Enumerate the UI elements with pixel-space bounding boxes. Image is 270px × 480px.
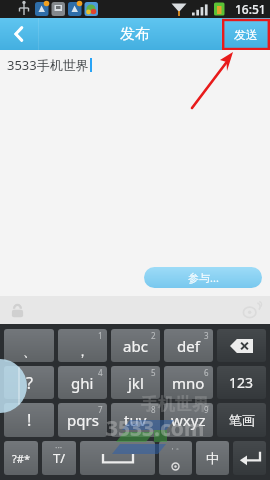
staticText: 手机世界: [141, 394, 209, 415]
button[interactable]: ?#*: [4, 441, 38, 475]
staticText: 6: [204, 367, 209, 378]
staticText: 参与...: [188, 270, 219, 285]
staticText: 、: [23, 343, 36, 359]
staticText: ghi: [71, 373, 94, 393]
staticText: mno: [172, 373, 205, 393]
button[interactable]: 发送: [222, 18, 270, 50]
staticText: 发送: [234, 27, 258, 42]
staticText: jkl: [128, 373, 144, 393]
button[interactable]: 4: [58, 366, 107, 399]
staticText: 3: [204, 330, 209, 341]
staticText: def: [177, 336, 200, 356]
button[interactable]: 、: [4, 329, 54, 362]
staticText: T/: [53, 449, 66, 467]
button[interactable]: Space: [80, 441, 155, 475]
button[interactable]: 2: [111, 329, 160, 362]
button[interactable]: Backspace: [217, 329, 266, 362]
button[interactable]: 123: [217, 366, 266, 399]
button[interactable]: 6: [164, 366, 213, 399]
staticText: ，。: [169, 442, 183, 451]
staticText: 发布: [120, 25, 150, 44]
button[interactable]: 笔画: [217, 403, 266, 437]
staticText: pqrs: [67, 410, 99, 430]
button[interactable]: Switch input method: [42, 441, 76, 475]
staticText: 3533.com: [106, 414, 205, 443]
staticText: 7: [98, 404, 103, 415]
button[interactable]: Weibo: [234, 296, 270, 324]
staticText: ，: [76, 343, 89, 359]
button[interactable]: 9: [164, 403, 213, 437]
button[interactable]: Punctuation: [159, 441, 192, 475]
button[interactable]: 8: [111, 403, 160, 437]
staticText: ?#*: [12, 451, 30, 466]
staticText: abc: [123, 336, 148, 356]
button[interactable]: 7: [58, 403, 107, 437]
button[interactable]: !: [4, 403, 54, 437]
staticText: wxyz: [171, 410, 206, 430]
staticText: 4: [98, 367, 103, 378]
staticText: 5: [151, 367, 156, 378]
staticText: 9: [204, 404, 209, 415]
button[interactable]: 参与...: [144, 267, 262, 288]
staticText: !: [27, 409, 32, 431]
button[interactable]: Enter: [233, 441, 266, 475]
button[interactable]: Privacy lock: [0, 296, 34, 324]
button[interactable]: Back: [0, 18, 38, 50]
button[interactable]: 中: [196, 441, 229, 475]
button[interactable]: ?: [4, 366, 54, 399]
staticText: 8: [151, 404, 156, 415]
staticText: 笔画: [229, 412, 255, 428]
staticText: 中: [206, 450, 219, 466]
staticText: 123: [229, 373, 254, 392]
staticText: tuv: [124, 410, 147, 430]
button[interactable]: 3: [164, 329, 213, 362]
staticText: ?: [26, 372, 33, 394]
staticText: 3533手机世界: [7, 56, 89, 74]
button[interactable]: 1: [58, 329, 107, 362]
staticText: 1: [98, 330, 103, 341]
staticText: 2: [151, 330, 156, 341]
button[interactable]: 5: [111, 366, 160, 399]
staticText: 16:51: [235, 1, 266, 17]
staticText: ···: [55, 441, 63, 453]
